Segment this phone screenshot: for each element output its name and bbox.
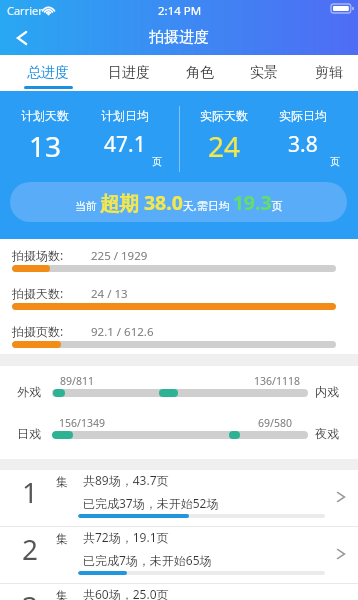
staticText: 拍摄进度 <box>149 28 209 47</box>
staticText: 集 <box>56 588 68 600</box>
staticText: 共60场，25.0页 <box>83 586 169 600</box>
staticText: 92.1 / 612.6 <box>91 324 154 340</box>
staticText: 当前 超期 38.0天,需日均 19.3页 <box>75 189 283 216</box>
staticText: 47.1 <box>104 130 146 159</box>
staticText: 实际天数 <box>200 108 248 123</box>
staticText: 共89场，43.7页 <box>83 472 169 488</box>
button[interactable]: 角色 <box>167 55 233 91</box>
staticText: 共72场，19.1页 <box>83 529 169 545</box>
staticText: 3 <box>10 587 50 600</box>
staticText: 69/580 <box>258 416 292 430</box>
staticText: Carrier <box>7 3 43 18</box>
staticText: 拍摄页数: <box>12 323 64 339</box>
staticText: 2:14 PM <box>158 3 202 19</box>
button[interactable]: 3 <box>0 584 358 600</box>
staticText: 夜戏 <box>315 426 339 441</box>
staticText: 计划天数 <box>21 108 69 123</box>
staticText: 日戏 <box>17 426 41 441</box>
staticText: 页 <box>152 155 162 168</box>
button[interactable]: 2 <box>0 527 358 584</box>
button[interactable]: Back <box>4 20 40 55</box>
staticText: 剪辑 <box>315 64 343 82</box>
button[interactable]: 1 <box>0 470 358 527</box>
staticText: 136/1118 <box>254 374 300 388</box>
staticText: 2 <box>10 530 50 568</box>
staticText: 计划日均 <box>101 108 149 123</box>
staticText: 24 / 13 <box>91 286 128 302</box>
staticText: 已完成37场，未开始52场 <box>83 495 219 511</box>
button[interactable]: 实景 <box>233 55 295 91</box>
staticText: 页 <box>330 155 340 168</box>
staticText: 已完成7场，未开始65场 <box>83 552 212 568</box>
staticText: 拍摄天数: <box>12 285 64 301</box>
staticText: 实际日均 <box>279 108 327 123</box>
button[interactable]: 总进度 <box>12 55 84 91</box>
staticText: 拍摄场数: <box>12 247 64 263</box>
staticText: 3.8 <box>288 130 318 159</box>
staticText: 13 <box>29 127 62 165</box>
staticText: 集 <box>56 531 68 546</box>
staticText: 89/811 <box>60 374 94 388</box>
staticText: 156/1349 <box>59 416 105 430</box>
staticText: 实景 <box>250 64 278 82</box>
staticText: 内戏 <box>315 384 339 399</box>
staticText: 24 <box>208 127 241 165</box>
button[interactable]: 剪辑 <box>299 55 358 91</box>
staticText: 日进度 <box>108 64 150 82</box>
staticText: 外戏 <box>17 384 41 399</box>
button[interactable]: 日进度 <box>93 55 165 91</box>
staticText: 集 <box>56 474 68 489</box>
staticText: 总进度 <box>27 64 69 82</box>
staticText: 1 <box>10 473 50 511</box>
staticText: 225 / 1929 <box>91 248 148 264</box>
staticText: 角色 <box>186 64 214 82</box>
